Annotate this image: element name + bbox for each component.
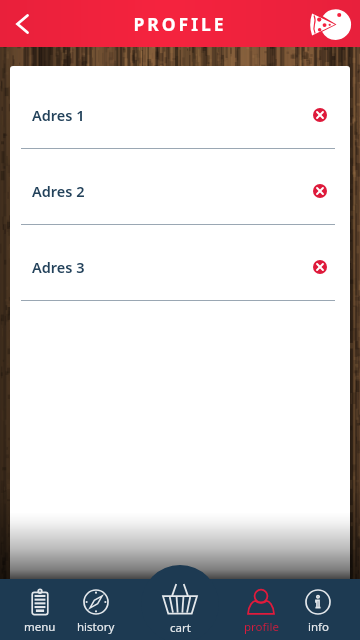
- staticText: PROFILE: [133, 12, 227, 36]
- staticText: Adres 2: [32, 181, 85, 201]
- button[interactable]: Adres 1: [10, 86, 350, 162]
- button[interactable]: cart: [141, 565, 219, 640]
- staticText: info: [308, 619, 329, 635]
- button[interactable]: info: [290, 579, 346, 640]
- button[interactable]: Adres 2: [10, 162, 350, 238]
- button[interactable]: Delete Adres 3: [305, 252, 335, 282]
- button[interactable]: Delete Adres 2: [305, 176, 335, 206]
- staticText: cart: [170, 620, 191, 636]
- button[interactable]: Adres 3: [10, 238, 350, 314]
- staticText: Adres 1: [32, 105, 85, 125]
- staticText: Adres 3: [32, 257, 85, 277]
- button[interactable]: history: [68, 579, 124, 640]
- button[interactable]: profile: [233, 579, 289, 640]
- button[interactable]: Back: [0, 2, 44, 46]
- button[interactable]: Delete Adres 1: [305, 100, 335, 130]
- button[interactable]: menu: [12, 579, 68, 640]
- button[interactable]: Pizza logo: [309, 2, 360, 46]
- staticText: profile: [244, 619, 279, 635]
- staticText: history: [77, 619, 115, 635]
- staticText: menu: [24, 619, 56, 635]
